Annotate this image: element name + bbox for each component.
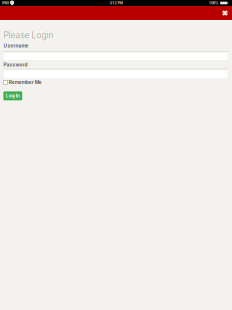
staticText: iPad	[1, 1, 8, 5]
staticText: Please Login	[3, 30, 53, 40]
staticText: Password	[3, 62, 27, 68]
staticText: 3:12 PM	[109, 1, 122, 5]
button[interactable]: Close	[219, 6, 231, 20]
staticText: Remember Me	[9, 79, 42, 85]
staticText: 100%	[209, 1, 219, 5]
staticText: Username	[3, 43, 28, 49]
staticText: Log In	[6, 93, 20, 99]
button[interactable]: Log In	[3, 91, 22, 100]
button[interactable]: Remember Me	[3, 80, 42, 84]
